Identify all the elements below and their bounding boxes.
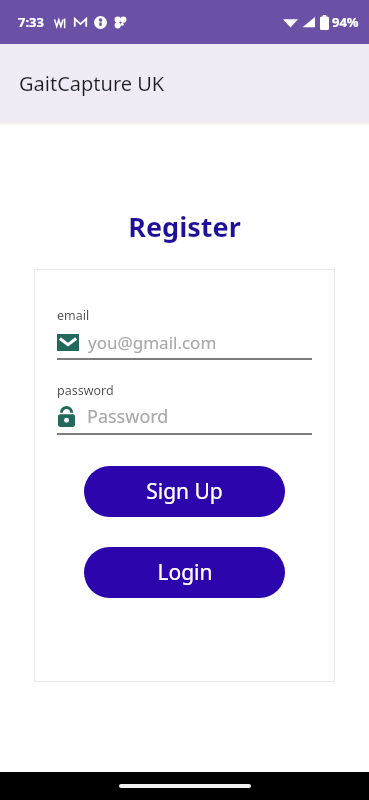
staticText: Login [157,558,213,587]
other: Email [57,334,79,351]
staticText: Register [128,208,241,245]
button[interactable]: Sign Up [84,466,285,517]
other: Password [57,406,76,428]
button[interactable]: Home [119,784,251,788]
staticText: Password [87,404,169,429]
button[interactable]: Login [84,547,285,598]
staticText: GaitCapture UK [19,70,165,97]
staticText: email [57,307,90,324]
staticText: 94% [332,13,359,31]
staticText: you@gmail.com [88,331,217,354]
staticText: 7:33 [18,13,44,31]
button[interactable]: Password [57,404,312,435]
button[interactable]: Email [57,331,312,360]
staticText: password [57,382,114,399]
staticText: Sign Up [146,477,223,506]
